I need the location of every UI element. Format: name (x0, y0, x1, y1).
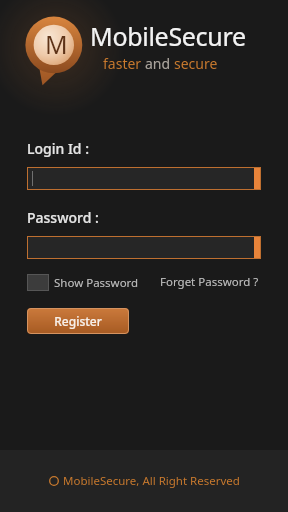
button[interactable]: Password (27, 236, 261, 259)
staticText: MobileSecure (90, 19, 246, 53)
staticText: secure (174, 54, 218, 73)
button[interactable]: Show Password (27, 274, 139, 291)
other: Copyright (49, 476, 59, 486)
staticText: Login Id : (27, 139, 89, 158)
staticText: Forget Password ? (160, 274, 259, 290)
staticText: Register (54, 313, 102, 329)
staticText: M (45, 27, 68, 61)
button[interactable]: Register (27, 308, 129, 334)
staticText: Show Password (54, 275, 139, 291)
staticText: faster (103, 54, 145, 73)
staticText: MobileSecure, All Right Reserved (63, 473, 240, 489)
button[interactable]: Login Id (27, 167, 261, 190)
button[interactable]: Forget Password ? (158, 272, 261, 292)
staticText: and (145, 54, 174, 73)
staticText: Password : (27, 208, 99, 227)
